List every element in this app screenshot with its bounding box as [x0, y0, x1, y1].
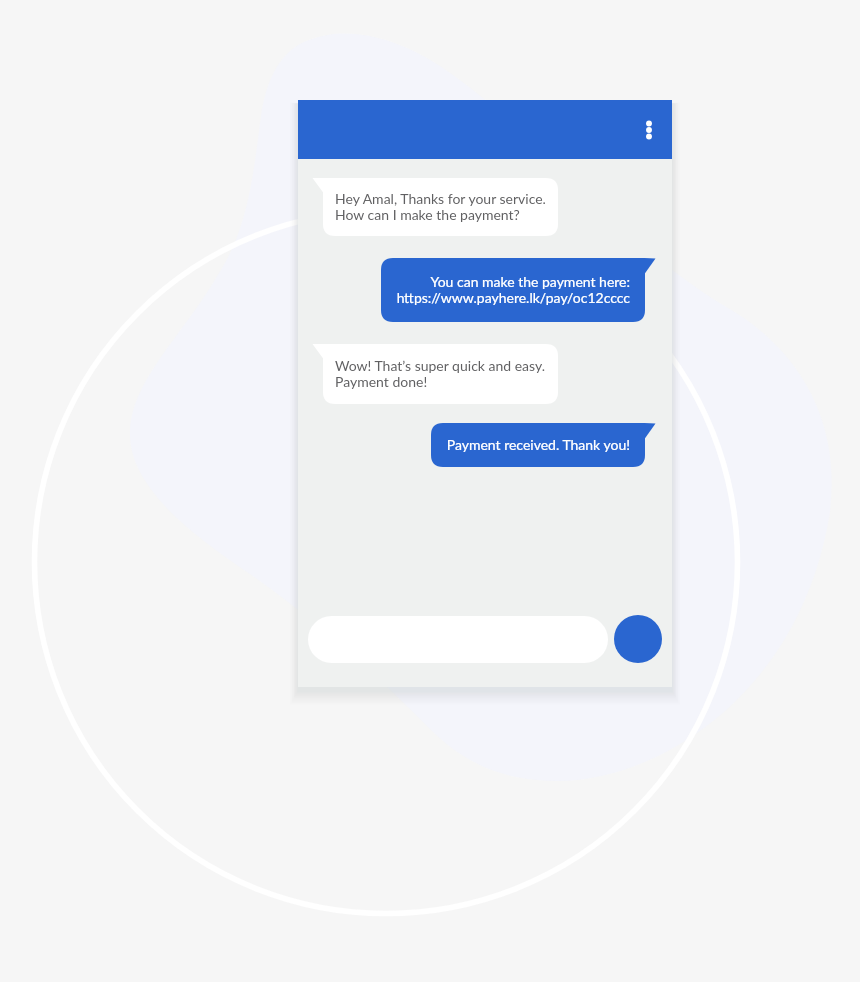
button[interactable]: Wow! That’s super quick and easy. Paymen…	[323, 344, 558, 404]
staticText: You can make the payment here: https://w…	[396, 274, 630, 306]
staticText: Payment received. Thank you!	[446, 437, 630, 453]
staticText: Wow! That’s super quick and easy. Paymen…	[335, 358, 546, 390]
button[interactable]: You can make the payment here: https://w…	[381, 258, 645, 322]
button[interactable]: Hey Amal, Thanks for your service. How c…	[323, 178, 558, 236]
button[interactable]: More options	[632, 113, 665, 146]
button[interactable]: Payment received. Thank you!	[431, 423, 645, 467]
staticText: Hey Amal, Thanks for your service. How c…	[335, 191, 546, 223]
button[interactable]: Send	[614, 615, 662, 663]
